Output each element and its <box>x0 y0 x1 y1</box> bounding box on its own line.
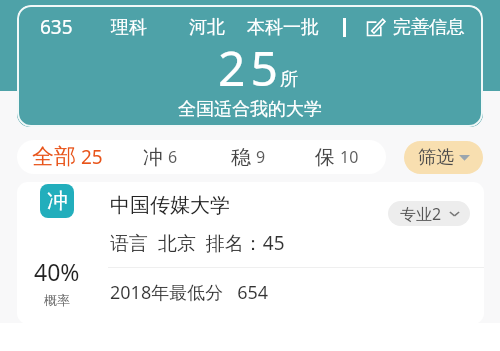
staticText: 全国适合我的大学 <box>178 98 322 121</box>
staticText: 10 <box>340 146 359 168</box>
other: 编辑完善信息 <box>366 18 385 37</box>
staticText: 所 <box>280 68 298 91</box>
staticText: 专业2 <box>400 203 442 225</box>
button[interactable]: 稳 <box>203 140 294 174</box>
staticText: 25 <box>81 144 103 170</box>
staticText: 全部 <box>32 143 76 171</box>
button[interactable]: 全部 <box>17 140 118 174</box>
staticText: 40% <box>34 256 80 287</box>
staticText: 完善信息 <box>393 16 465 39</box>
staticText: 本科一批 <box>247 16 319 39</box>
staticText: 稳 <box>231 145 251 170</box>
staticText: 25 <box>218 35 283 100</box>
button[interactable]: 冲 <box>17 182 484 324</box>
staticText: 9 <box>256 146 266 168</box>
staticText: 中国传媒大学 <box>110 193 230 218</box>
staticText: 理科 <box>111 16 147 39</box>
staticText: 概率 <box>44 292 70 308</box>
staticText: 冲 <box>47 188 68 214</box>
button[interactable]: 筛选 <box>404 141 483 174</box>
staticText: 冲 <box>143 145 163 170</box>
button[interactable]: 专业2 <box>400 201 460 226</box>
staticText: 语言 北京 排名：45 <box>110 230 285 256</box>
button[interactable]: 冲 <box>118 140 203 174</box>
staticText: 635 <box>40 14 73 40</box>
staticText: 2018年最低分 654 <box>110 280 269 305</box>
staticText: 筛选 <box>418 146 454 169</box>
staticText: 6 <box>168 146 178 168</box>
staticText: 河北 <box>189 16 225 39</box>
staticText: 保 <box>315 145 335 170</box>
button[interactable]: 保 <box>294 140 380 174</box>
